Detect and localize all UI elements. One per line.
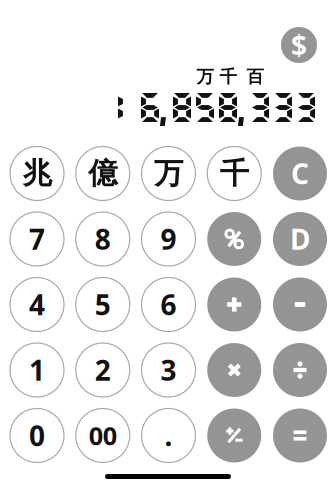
button[interactable]: .	[141, 408, 195, 462]
button[interactable]: 兆	[10, 146, 64, 200]
staticText: 万	[154, 155, 183, 191]
button[interactable]: 0	[10, 408, 64, 462]
button[interactable]: 8	[76, 212, 130, 266]
button[interactable]: Multiply	[207, 343, 261, 397]
staticText: 6	[160, 286, 176, 323]
staticText: C	[291, 155, 309, 192]
staticText: 2	[95, 351, 111, 389]
staticText: 百	[246, 66, 263, 87]
staticText: 3	[160, 351, 176, 389]
button[interactable]: 3	[141, 343, 195, 397]
button[interactable]: Divide	[273, 343, 327, 397]
staticText: 1	[29, 351, 45, 389]
button[interactable]: 1	[10, 343, 64, 397]
button[interactable]: Plus minus	[207, 408, 261, 462]
staticText: 億	[88, 155, 117, 191]
button[interactable]: 7	[10, 212, 64, 266]
staticText: .	[164, 417, 172, 454]
staticText: $	[291, 26, 307, 64]
button[interactable]: C	[273, 146, 327, 200]
button[interactable]: Minus	[273, 277, 327, 331]
button[interactable]: D	[273, 212, 327, 266]
button[interactable]: 2	[76, 343, 130, 397]
staticText: 万	[196, 66, 213, 87]
staticText: 0	[29, 417, 45, 454]
staticText: 千	[220, 155, 249, 191]
button[interactable]: 00	[76, 408, 130, 462]
staticText: 8	[95, 220, 111, 258]
button[interactable]: Currency	[281, 27, 317, 63]
button[interactable]: 千	[207, 146, 261, 200]
button[interactable]: 6	[141, 277, 195, 331]
button[interactable]: Percent	[207, 212, 261, 266]
staticText: 7	[29, 220, 45, 258]
button[interactable]: 5	[76, 277, 130, 331]
staticText: 千	[219, 66, 236, 87]
button[interactable]: Equals	[273, 408, 327, 462]
button[interactable]: 9	[141, 212, 195, 266]
button[interactable]: 万	[141, 146, 195, 200]
staticText: 00	[89, 419, 117, 452]
button[interactable]: 億	[76, 146, 130, 200]
staticText: 4	[29, 286, 45, 323]
staticText: D	[290, 220, 310, 258]
staticText: 9	[160, 220, 176, 258]
staticText: 兆	[22, 155, 51, 191]
button[interactable]: Plus	[207, 277, 261, 331]
button[interactable]: 4	[10, 277, 64, 331]
staticText: 5	[95, 286, 111, 323]
